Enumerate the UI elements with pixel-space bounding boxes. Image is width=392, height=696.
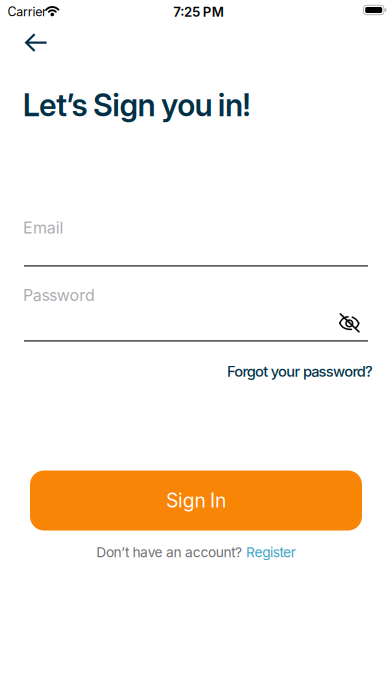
button[interactable]: Forgot your password? [227,362,373,380]
button[interactable]: Sign In [30,470,362,530]
button[interactable]: Show password [339,314,359,332]
staticText: Don’t have an account? [96,544,242,561]
staticText: Let’s Sign you in! [23,86,251,124]
staticText: Carrier [7,4,47,19]
button[interactable]: Register [246,544,296,561]
staticText: Register [246,544,296,561]
staticText: Password [23,285,95,305]
staticText: Email [23,218,64,237]
staticText: Sign In [166,489,226,512]
button[interactable]: Back [19,27,53,59]
staticText: 7:25 PM [173,4,224,20]
staticText: Forgot your password? [227,362,373,380]
